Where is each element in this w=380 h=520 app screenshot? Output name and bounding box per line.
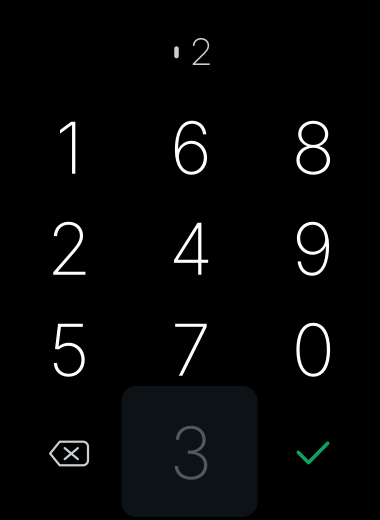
staticText: 9 <box>292 205 334 292</box>
button[interactable]: 6 <box>130 97 252 198</box>
button[interactable]: Delete <box>8 402 130 503</box>
button[interactable]: 3 <box>130 402 252 503</box>
button[interactable]: 2 <box>8 198 130 299</box>
button[interactable]: 0 <box>252 299 374 400</box>
staticText: 6 <box>170 104 212 191</box>
button[interactable]: 9 <box>252 198 374 299</box>
button[interactable]: 5 <box>8 299 130 400</box>
staticText: 8 <box>291 104 334 191</box>
button[interactable]: 1 <box>8 97 130 198</box>
staticText: 2 <box>47 205 91 292</box>
staticText: 5 <box>48 306 90 393</box>
button[interactable]: 7 <box>130 299 252 400</box>
button[interactable]: 4 <box>130 198 252 299</box>
button[interactable]: Confirm <box>252 402 374 503</box>
staticText: 4 <box>169 205 213 292</box>
staticText: 2 <box>191 29 212 74</box>
staticText: 1 <box>55 104 82 191</box>
button[interactable]: 8 <box>252 97 374 198</box>
staticText: 3 <box>169 409 212 496</box>
staticText: 7 <box>171 306 211 393</box>
staticText: 0 <box>291 306 334 393</box>
